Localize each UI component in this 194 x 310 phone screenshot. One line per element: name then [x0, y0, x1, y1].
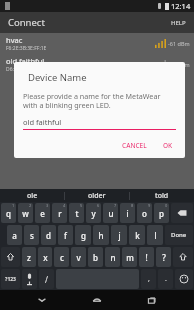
- button[interactable]: HELP: [163, 15, 194, 31]
- staticText: a: [12, 230, 17, 241]
- button[interactable]: Emoji: [175, 269, 193, 289]
- staticText: c: [60, 252, 64, 263]
- staticText: u: [108, 208, 114, 219]
- staticText: 1: [12, 203, 15, 208]
- button[interactable]: Done: [165, 225, 193, 245]
- staticText: 8: [131, 203, 134, 208]
- button[interactable]: old faithful: [0, 54, 194, 75]
- staticText: w: [22, 208, 29, 219]
- staticText: told: [155, 191, 169, 201]
- button[interactable]: Back: [29, 290, 55, 310]
- button[interactable]: .: [158, 269, 173, 289]
- button[interactable]: j: [111, 225, 127, 245]
- staticText: 7: [114, 203, 117, 208]
- staticText: v: [76, 252, 81, 263]
- button[interactable]: OK: [157, 138, 179, 153]
- button[interactable]: a: [7, 225, 22, 245]
- staticText: 6: [97, 203, 100, 208]
- staticText: -44 dBm: [168, 61, 190, 68]
- staticText: i: [126, 208, 129, 219]
- staticText: -61 dBm: [168, 40, 190, 47]
- button[interactable]: m: [122, 247, 137, 267]
- staticText: 4: [63, 203, 66, 208]
- button[interactable]: Voice input: [22, 269, 37, 289]
- button[interactable]: 0: [154, 203, 169, 223]
- button[interactable]: Shift: [173, 247, 193, 267]
- staticText: f: [64, 230, 67, 241]
- staticText: older: [88, 191, 106, 201]
- button[interactable]: h: [93, 225, 109, 245]
- button[interactable]: x: [38, 247, 52, 267]
- staticText: !: [145, 252, 148, 263]
- staticText: t: [75, 208, 79, 219]
- staticText: CANCEL: [122, 141, 147, 150]
- button[interactable]: s: [24, 225, 39, 245]
- staticText: d: [46, 230, 51, 241]
- button[interactable]: ?123: [1, 269, 20, 289]
- button[interactable]: Home: [84, 290, 110, 310]
- button[interactable]: 9: [137, 203, 152, 223]
- button[interactable]: n: [105, 247, 120, 267]
- staticText: ,: [148, 274, 150, 284]
- staticText: h: [98, 230, 104, 241]
- staticText: s: [30, 230, 34, 241]
- staticText: F6:2E:3B:3E:FF:1E: [6, 45, 47, 52]
- button[interactable]: !: [139, 247, 154, 267]
- staticText: old faithful: [23, 117, 62, 127]
- staticText: 5: [80, 203, 83, 208]
- button[interactable]: 1: [1, 203, 16, 223]
- button[interactable]: k: [129, 225, 145, 245]
- staticText: ole: [27, 191, 38, 201]
- button[interactable]: 2: [18, 203, 33, 223]
- staticText: e: [40, 208, 45, 219]
- staticText: .: [165, 274, 167, 284]
- button[interactable]: told: [130, 189, 194, 202]
- button[interactable]: c: [54, 247, 69, 267]
- button[interactable]: /: [39, 269, 54, 289]
- staticText: b: [93, 252, 98, 263]
- staticText: o: [142, 208, 147, 219]
- staticText: 12:14: [171, 1, 191, 11]
- button[interactable]: 5: [69, 203, 84, 223]
- staticText: Done: [171, 231, 187, 239]
- staticText: g: [81, 230, 86, 241]
- button[interactable]: 6: [86, 203, 101, 223]
- button[interactable]: v: [71, 247, 86, 267]
- button[interactable]: ?: [156, 247, 171, 267]
- staticText: x: [43, 252, 48, 263]
- staticText: r: [58, 208, 62, 219]
- button[interactable]: g: [75, 225, 91, 245]
- button[interactable]: 4: [52, 203, 67, 223]
- button[interactable]: Recents: [139, 290, 165, 310]
- staticText: l: [154, 230, 157, 241]
- staticText: k: [135, 230, 140, 241]
- button[interactable]: ole: [0, 189, 64, 202]
- button[interactable]: CANCEL: [116, 138, 153, 153]
- button[interactable]: l: [147, 225, 163, 245]
- button[interactable]: z: [22, 247, 36, 267]
- button[interactable]: d: [41, 225, 56, 245]
- button[interactable]: 7: [103, 203, 118, 223]
- button[interactable]: hvac: [0, 33, 194, 54]
- staticText: n: [110, 252, 116, 263]
- staticText: 2: [29, 203, 32, 208]
- button[interactable]: ,: [141, 269, 156, 289]
- staticText: z: [27, 252, 31, 263]
- staticText: ?: [162, 252, 166, 263]
- staticText: 0: [165, 203, 168, 208]
- button[interactable]: Backspace: [171, 203, 193, 223]
- staticText: ?123: [5, 276, 16, 283]
- staticText: m: [126, 252, 134, 263]
- staticText: Device Name: [28, 71, 87, 84]
- staticText: p: [159, 208, 164, 219]
- button[interactable]: older: [65, 189, 129, 202]
- button[interactable]: Shift: [1, 247, 20, 267]
- button[interactable]: f: [58, 225, 73, 245]
- staticText: y: [91, 208, 96, 219]
- button[interactable]: b: [88, 247, 103, 267]
- staticText: Please provide a name for the MetaWear w…: [23, 91, 176, 111]
- button[interactable]: 3: [35, 203, 50, 223]
- button[interactable]: 8: [120, 203, 135, 223]
- staticText: hvac: [6, 35, 23, 45]
